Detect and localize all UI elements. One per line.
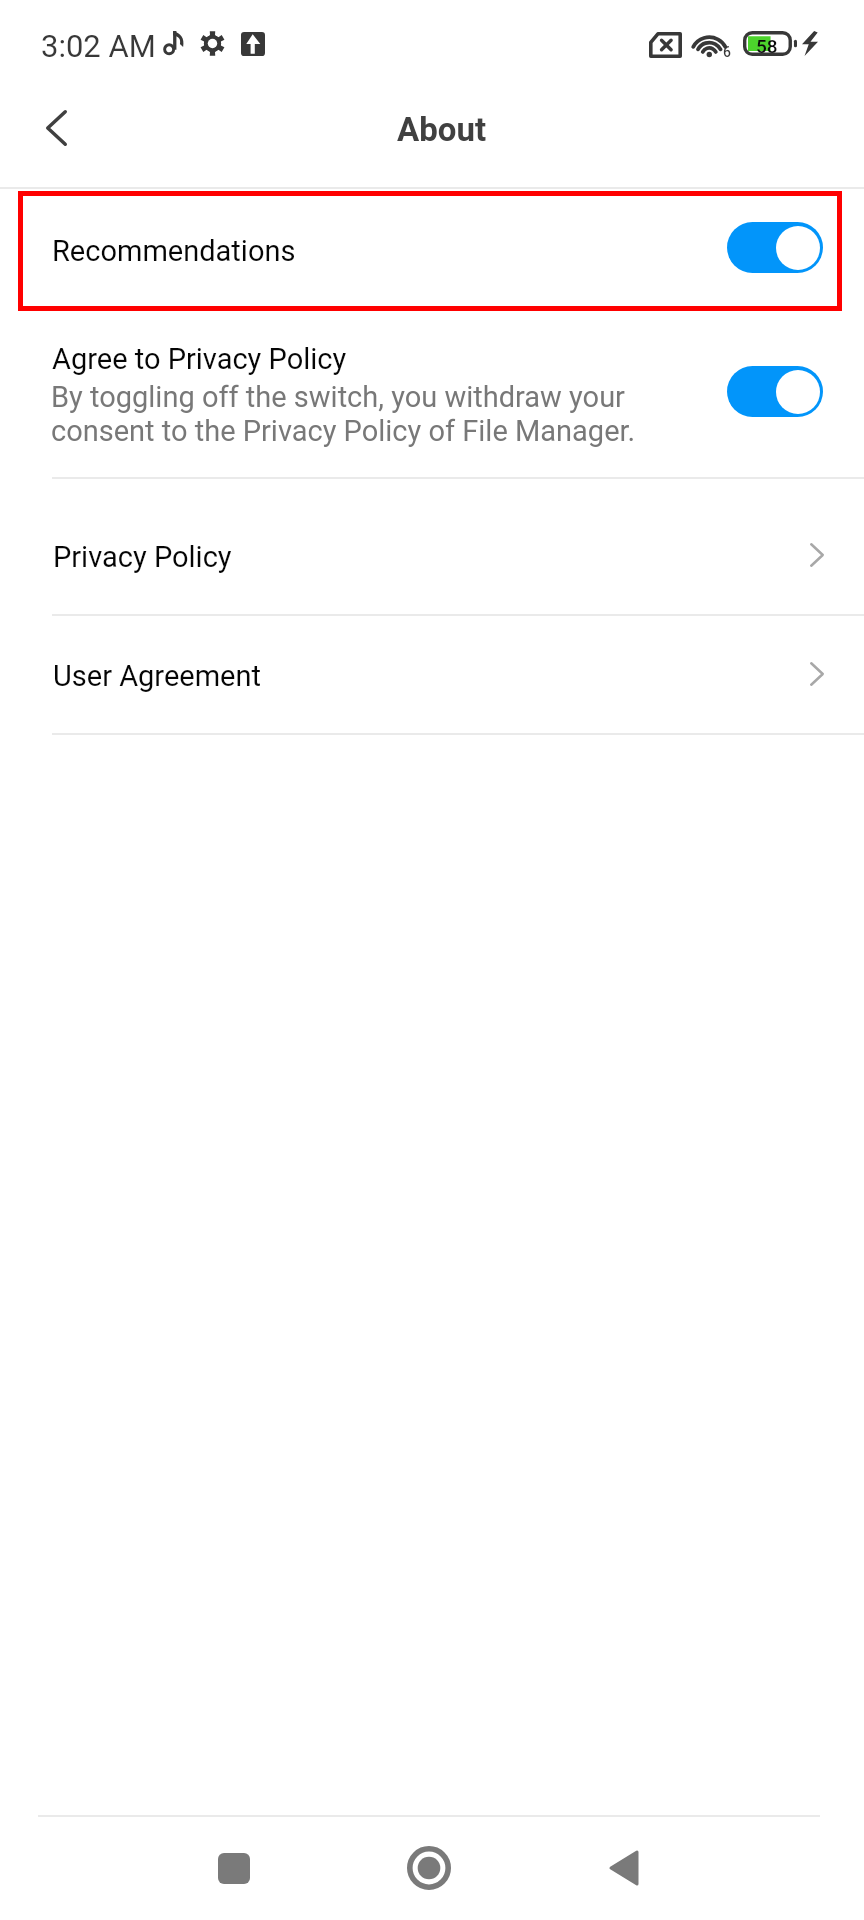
button[interactable]: Back [584,1828,664,1908]
button[interactable]: Home [389,1828,469,1908]
button[interactable]: Agree to Privacy Policy switch, on [727,366,823,417]
button[interactable]: User Agreement [0,616,864,736]
button[interactable]: Agree to Privacy Policy [0,311,864,475]
staticText: 58 [756,35,778,57]
button[interactable]: Recommendations [0,186,864,311]
staticText: User Agreement [53,659,261,693]
staticText: Privacy Policy [53,540,232,574]
button[interactable]: Recent apps [194,1828,274,1908]
button[interactable]: Recommendations switch, on [727,222,823,273]
staticText: About [397,110,487,149]
button[interactable]: Back [20,102,92,174]
staticText: Recommendations [52,234,296,268]
staticText: 6 [723,44,731,60]
staticText: By toggling off the switch, you withdraw… [51,380,636,448]
staticText: Agree to Privacy Policy [52,342,347,376]
staticText: 3:02 AM [41,28,156,64]
button[interactable]: Privacy Policy [0,497,864,617]
